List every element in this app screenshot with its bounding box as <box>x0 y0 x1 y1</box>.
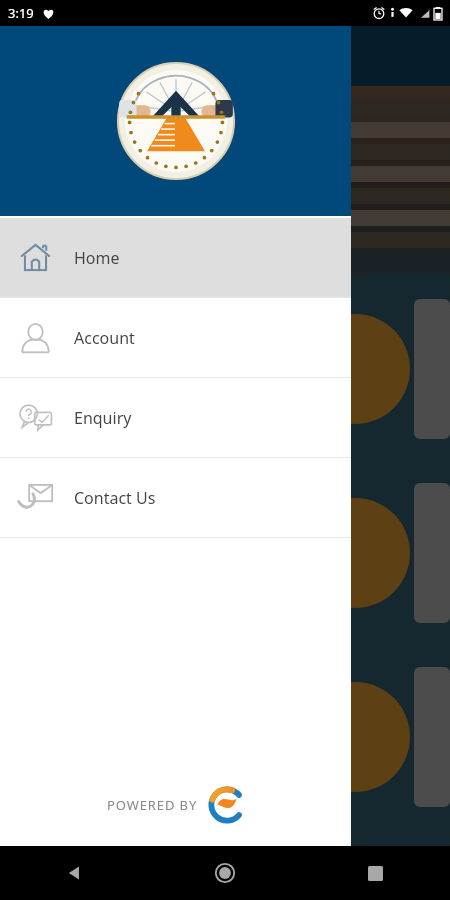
staticText: 3:19 <box>8 4 34 22</box>
staticText: Enquiry <box>74 407 132 429</box>
button[interactable]: Account <box>0 298 351 377</box>
button[interactable]: Contact Us <box>0 458 351 537</box>
button[interactable]: Home <box>0 218 351 297</box>
staticText: Home <box>74 247 120 269</box>
button[interactable]: Recent apps <box>300 846 450 900</box>
staticText: Account <box>74 327 135 349</box>
staticText: POWERED BY <box>107 796 198 814</box>
button[interactable]: Enquiry <box>0 378 351 457</box>
button[interactable]: Home <box>150 846 300 900</box>
button[interactable]: Back <box>0 846 150 900</box>
staticText: Contact Us <box>74 487 156 509</box>
